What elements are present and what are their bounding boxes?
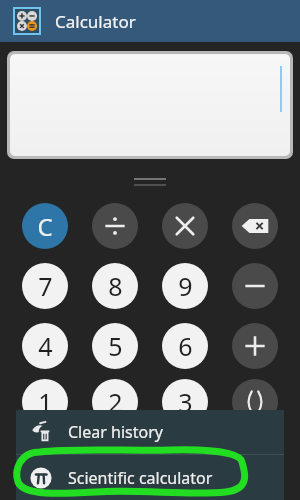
button[interactable]: 4 — [22, 323, 68, 369]
staticText: 2 — [108, 385, 123, 419]
staticText: 4 — [38, 329, 53, 363]
staticText: 1 — [38, 385, 53, 419]
button[interactable]: Multiply — [162, 203, 208, 249]
button[interactable] — [10, 54, 290, 156]
button[interactable]: Parentheses — [232, 379, 278, 425]
staticText: 9 — [178, 269, 193, 303]
button[interactable]: 5 — [92, 323, 138, 369]
button[interactable]: Plus — [232, 323, 278, 369]
button[interactable]: Minus — [232, 263, 278, 309]
button[interactable]: 9 — [162, 263, 208, 309]
staticText: Calculator — [55, 10, 136, 33]
button[interactable]: 3 — [162, 379, 208, 425]
button[interactable]: Divide — [92, 203, 138, 249]
button[interactable]: 1 — [22, 379, 68, 425]
staticText: C — [37, 210, 53, 243]
staticText: 5 — [108, 329, 123, 363]
staticText: 3 — [178, 385, 193, 419]
staticText: 7 — [38, 269, 53, 303]
button[interactable]: C — [22, 203, 68, 249]
button[interactable]: Delete — [232, 203, 278, 249]
button[interactable]: Scientific calculator — [16, 455, 284, 500]
button[interactable]: 2 — [92, 379, 138, 425]
staticText: 6 — [178, 329, 193, 363]
staticText: Scientific calculator — [68, 467, 213, 489]
button[interactable]: 7 — [22, 263, 68, 309]
button[interactable]: Calculator icon — [15, 9, 39, 33]
staticText: Clear history — [68, 421, 163, 443]
staticText: 8 — [108, 269, 123, 303]
button[interactable]: 6 — [162, 323, 208, 369]
button[interactable]: 8 — [92, 263, 138, 309]
button[interactable]: Clear history — [16, 410, 284, 454]
